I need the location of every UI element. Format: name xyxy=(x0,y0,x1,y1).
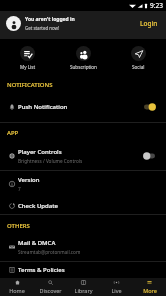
staticText: Check Update xyxy=(18,202,58,210)
staticText: Brightness / Volume Controls xyxy=(18,158,83,164)
button[interactable]: Subscription xyxy=(56,39,111,72)
button[interactable]: Push Notification xyxy=(0,95,166,122)
button[interactable]: Version xyxy=(0,171,166,197)
button[interactable]: Mail & DMCA xyxy=(0,233,166,261)
staticText: Get started now! xyxy=(25,25,60,31)
staticText: OTHERS xyxy=(7,222,30,230)
button[interactable]: Social xyxy=(111,39,166,72)
button[interactable]: Login xyxy=(137,14,161,33)
button[interactable]: Toggle off xyxy=(143,152,156,160)
button[interactable]: Discover xyxy=(34,278,67,296)
button[interactable]: More xyxy=(133,278,166,296)
staticText: Social xyxy=(132,64,145,70)
button[interactable]: Home xyxy=(0,278,34,296)
staticText: You aren't logged in xyxy=(25,16,75,23)
staticText: 9:23 xyxy=(150,1,163,10)
staticText: More xyxy=(143,287,157,294)
staticText: Login xyxy=(140,19,158,28)
staticText: Library xyxy=(74,287,93,294)
staticText: NOTIFICATIONS xyxy=(7,81,53,89)
staticText: Home xyxy=(9,287,25,294)
staticText: Push Notification xyxy=(18,103,68,111)
staticText: APP xyxy=(7,129,19,137)
staticText: Version xyxy=(18,176,40,184)
button[interactable]: Player Controls xyxy=(0,142,166,170)
button[interactable]: Check Update xyxy=(0,197,166,214)
staticText: Mail & DMCA xyxy=(18,239,56,247)
button[interactable]: Terms & Policies xyxy=(0,262,166,278)
staticText: My List xyxy=(20,64,36,70)
staticText: Terms & Policies xyxy=(18,266,65,274)
button[interactable]: Live xyxy=(100,278,133,296)
button[interactable]: Toggle on xyxy=(143,103,156,111)
staticText: Subscription xyxy=(70,64,97,70)
staticText: Discover xyxy=(39,287,62,294)
button[interactable]: My List xyxy=(0,39,55,72)
staticText: 7 xyxy=(18,186,21,192)
staticText: Live xyxy=(111,287,122,294)
staticText: Player Controls xyxy=(18,148,62,156)
staticText: Streamtab@protonmail.com xyxy=(18,249,81,255)
button[interactable]: Library xyxy=(67,278,100,296)
